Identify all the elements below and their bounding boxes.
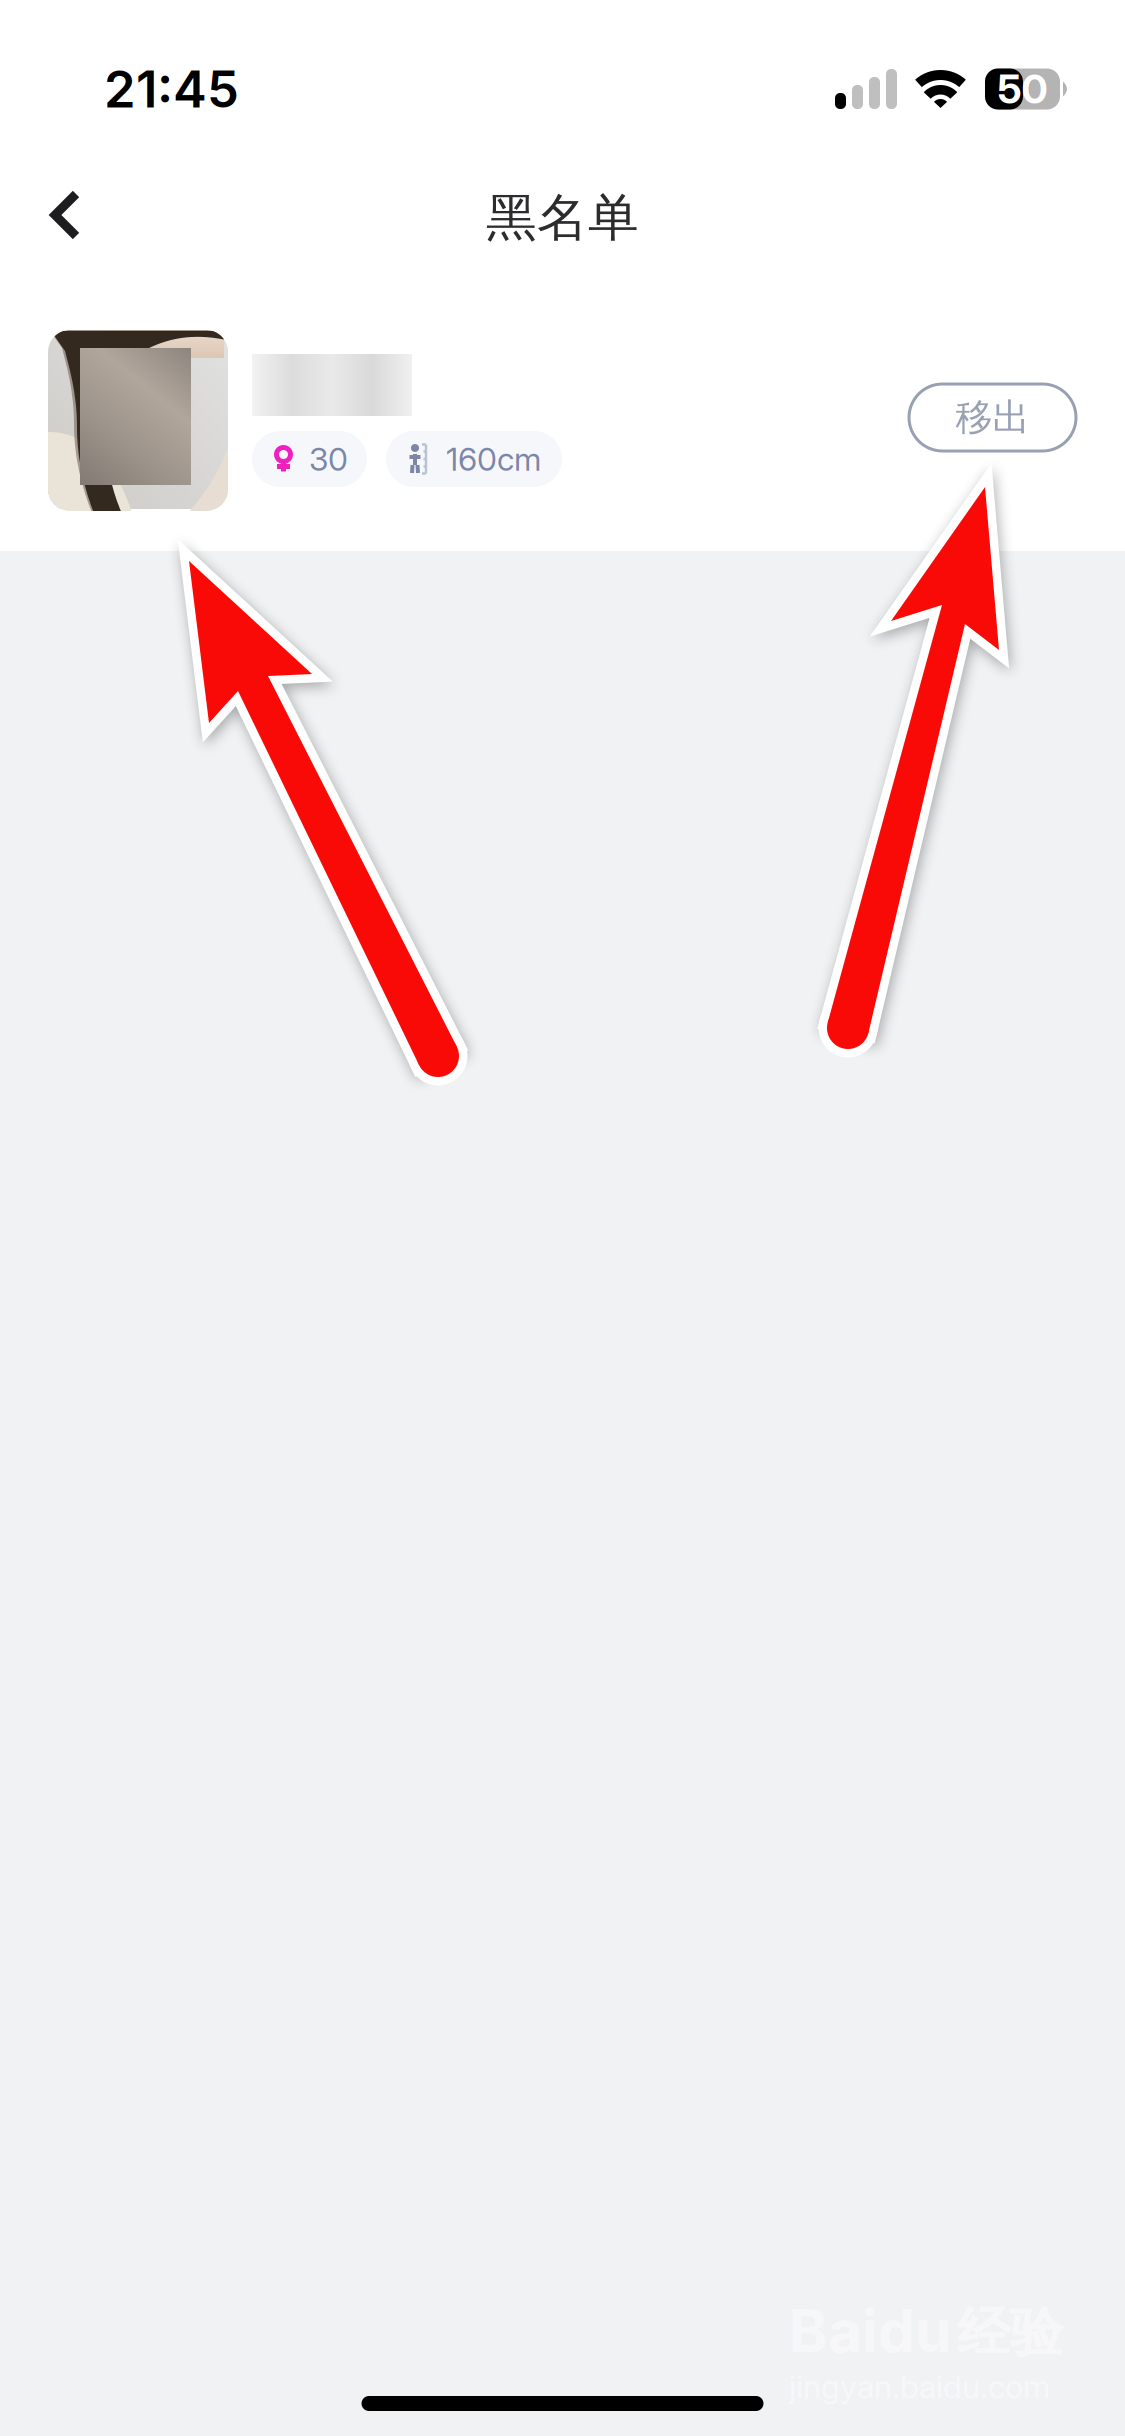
staticText: 30 [309, 440, 348, 478]
button[interactable]: Back [0, 178, 111, 264]
staticText: 移出 [955, 394, 1029, 441]
staticText: 160cm [446, 440, 541, 478]
staticText: 黑名单 [486, 186, 639, 250]
staticText: 50 [997, 65, 1047, 113]
button[interactable]: 移出 [909, 384, 1076, 451]
staticText: 21:45 [104, 58, 239, 120]
